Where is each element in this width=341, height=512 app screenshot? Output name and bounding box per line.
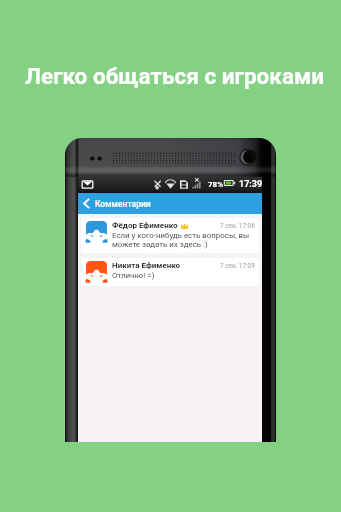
- staticText: 78%: [208, 180, 224, 189]
- staticText: 17:39: [239, 179, 263, 190]
- staticText: Легко общаться с игроками: [25, 63, 324, 89]
- button[interactable]: Никита Ефименко: [81, 258, 259, 286]
- button[interactable]: Back: [78, 193, 262, 214]
- button[interactable]: Back: [78, 193, 95, 214]
- staticText: 7 сен. 17:09: [220, 262, 255, 270]
- staticText: 7 сен. 17:06: [220, 222, 255, 230]
- button[interactable]: Фёдор Ефименко: [81, 218, 259, 253]
- staticText: Комментарии: [95, 199, 151, 209]
- staticText: Никита Ефименко: [112, 261, 181, 270]
- staticText: Если у кого-нибудь есть вопросы, вы може…: [112, 231, 250, 249]
- staticText: Отлично! =): [112, 271, 155, 280]
- staticText: Фёдор Ефименко: [112, 221, 178, 230]
